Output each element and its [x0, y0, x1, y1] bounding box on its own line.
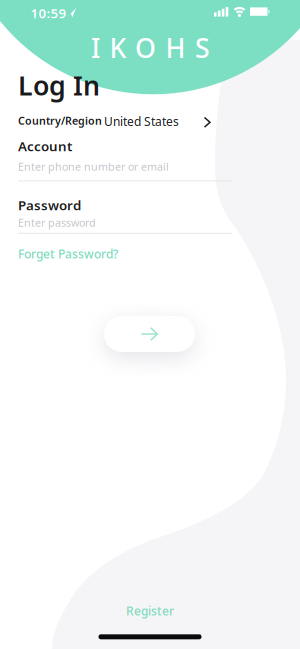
staticText: Forget Password? [18, 246, 118, 262]
staticText: IKOHS [91, 30, 210, 65]
button[interactable]: Forget Password? [18, 246, 118, 262]
staticText: Register [126, 603, 174, 619]
staticText: Country/Region [18, 113, 102, 128]
button[interactable]: Country/Region [0, 106, 300, 134]
button[interactable]: Register [90, 599, 210, 623]
staticText: Log In [18, 67, 100, 103]
button[interactable]: Log In [104, 316, 195, 352]
staticText: Password [18, 196, 81, 214]
staticText: 10:59 [30, 4, 66, 22]
staticText: Account [18, 137, 72, 155]
staticText: United States [104, 113, 179, 129]
staticText: Enter phone number or email [18, 159, 169, 174]
staticText: Enter password [18, 215, 96, 230]
